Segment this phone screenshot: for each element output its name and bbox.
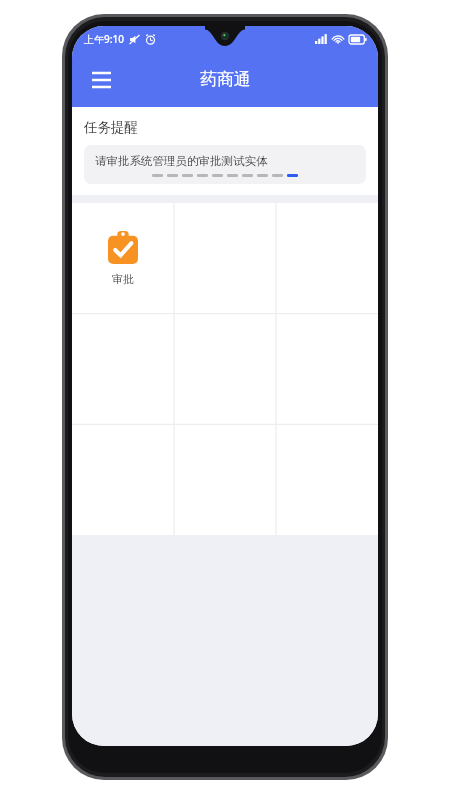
button[interactable]: Menu bbox=[80, 59, 122, 101]
staticText: 任务提醒 bbox=[84, 119, 138, 136]
staticText: 请审批系统管理员的审批测试实体 bbox=[95, 154, 268, 168]
staticText: 审批 bbox=[112, 272, 134, 286]
button[interactable]: 审批 bbox=[72, 203, 174, 313]
staticText: 药商通 bbox=[200, 69, 251, 90]
staticText: 上午9:10 bbox=[84, 32, 124, 46]
button[interactable]: 请审批系统管理员的审批测试实体 bbox=[84, 145, 366, 184]
